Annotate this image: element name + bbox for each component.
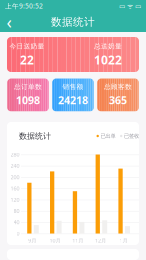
staticText: 200 [10,173,19,181]
staticText: ‹ [6,10,11,33]
staticText: 今日送奶量 [9,42,44,50]
staticText: 数据统计 [19,131,51,141]
button[interactable]: Back [0,12,18,32]
staticText: 数据统计 [51,15,95,28]
staticText: 11月 [72,237,83,244]
staticText: 销售额 [62,83,83,91]
staticText: 280 [10,151,19,158]
staticText: 24218 [58,93,88,107]
staticText: 240 [10,162,19,169]
staticText: 120 [10,196,19,203]
staticText: 1022 [94,52,122,68]
staticText: 已出单 [100,133,115,139]
staticText: 总送奶量 [94,42,122,50]
staticText: 1月 [119,237,127,244]
staticText: ▭ ᯤ ▭ [119,2,141,10]
staticText: 上午9:50:52 [5,2,43,10]
staticText: 80 [13,207,19,214]
staticText: 9月 [28,237,36,244]
staticText: 0 [16,230,19,237]
staticText: 已签收 [124,133,139,139]
staticText: 22 [20,52,34,68]
staticText: 365 [109,93,127,107]
staticText: 1098 [16,93,40,107]
staticText: 总订单数 [14,83,42,91]
staticText: 10月 [49,237,60,244]
staticText: 12月 [95,237,106,244]
staticText: 40 [13,219,19,226]
staticText: 总顾客数 [104,83,132,91]
staticText: 160 [10,185,19,192]
